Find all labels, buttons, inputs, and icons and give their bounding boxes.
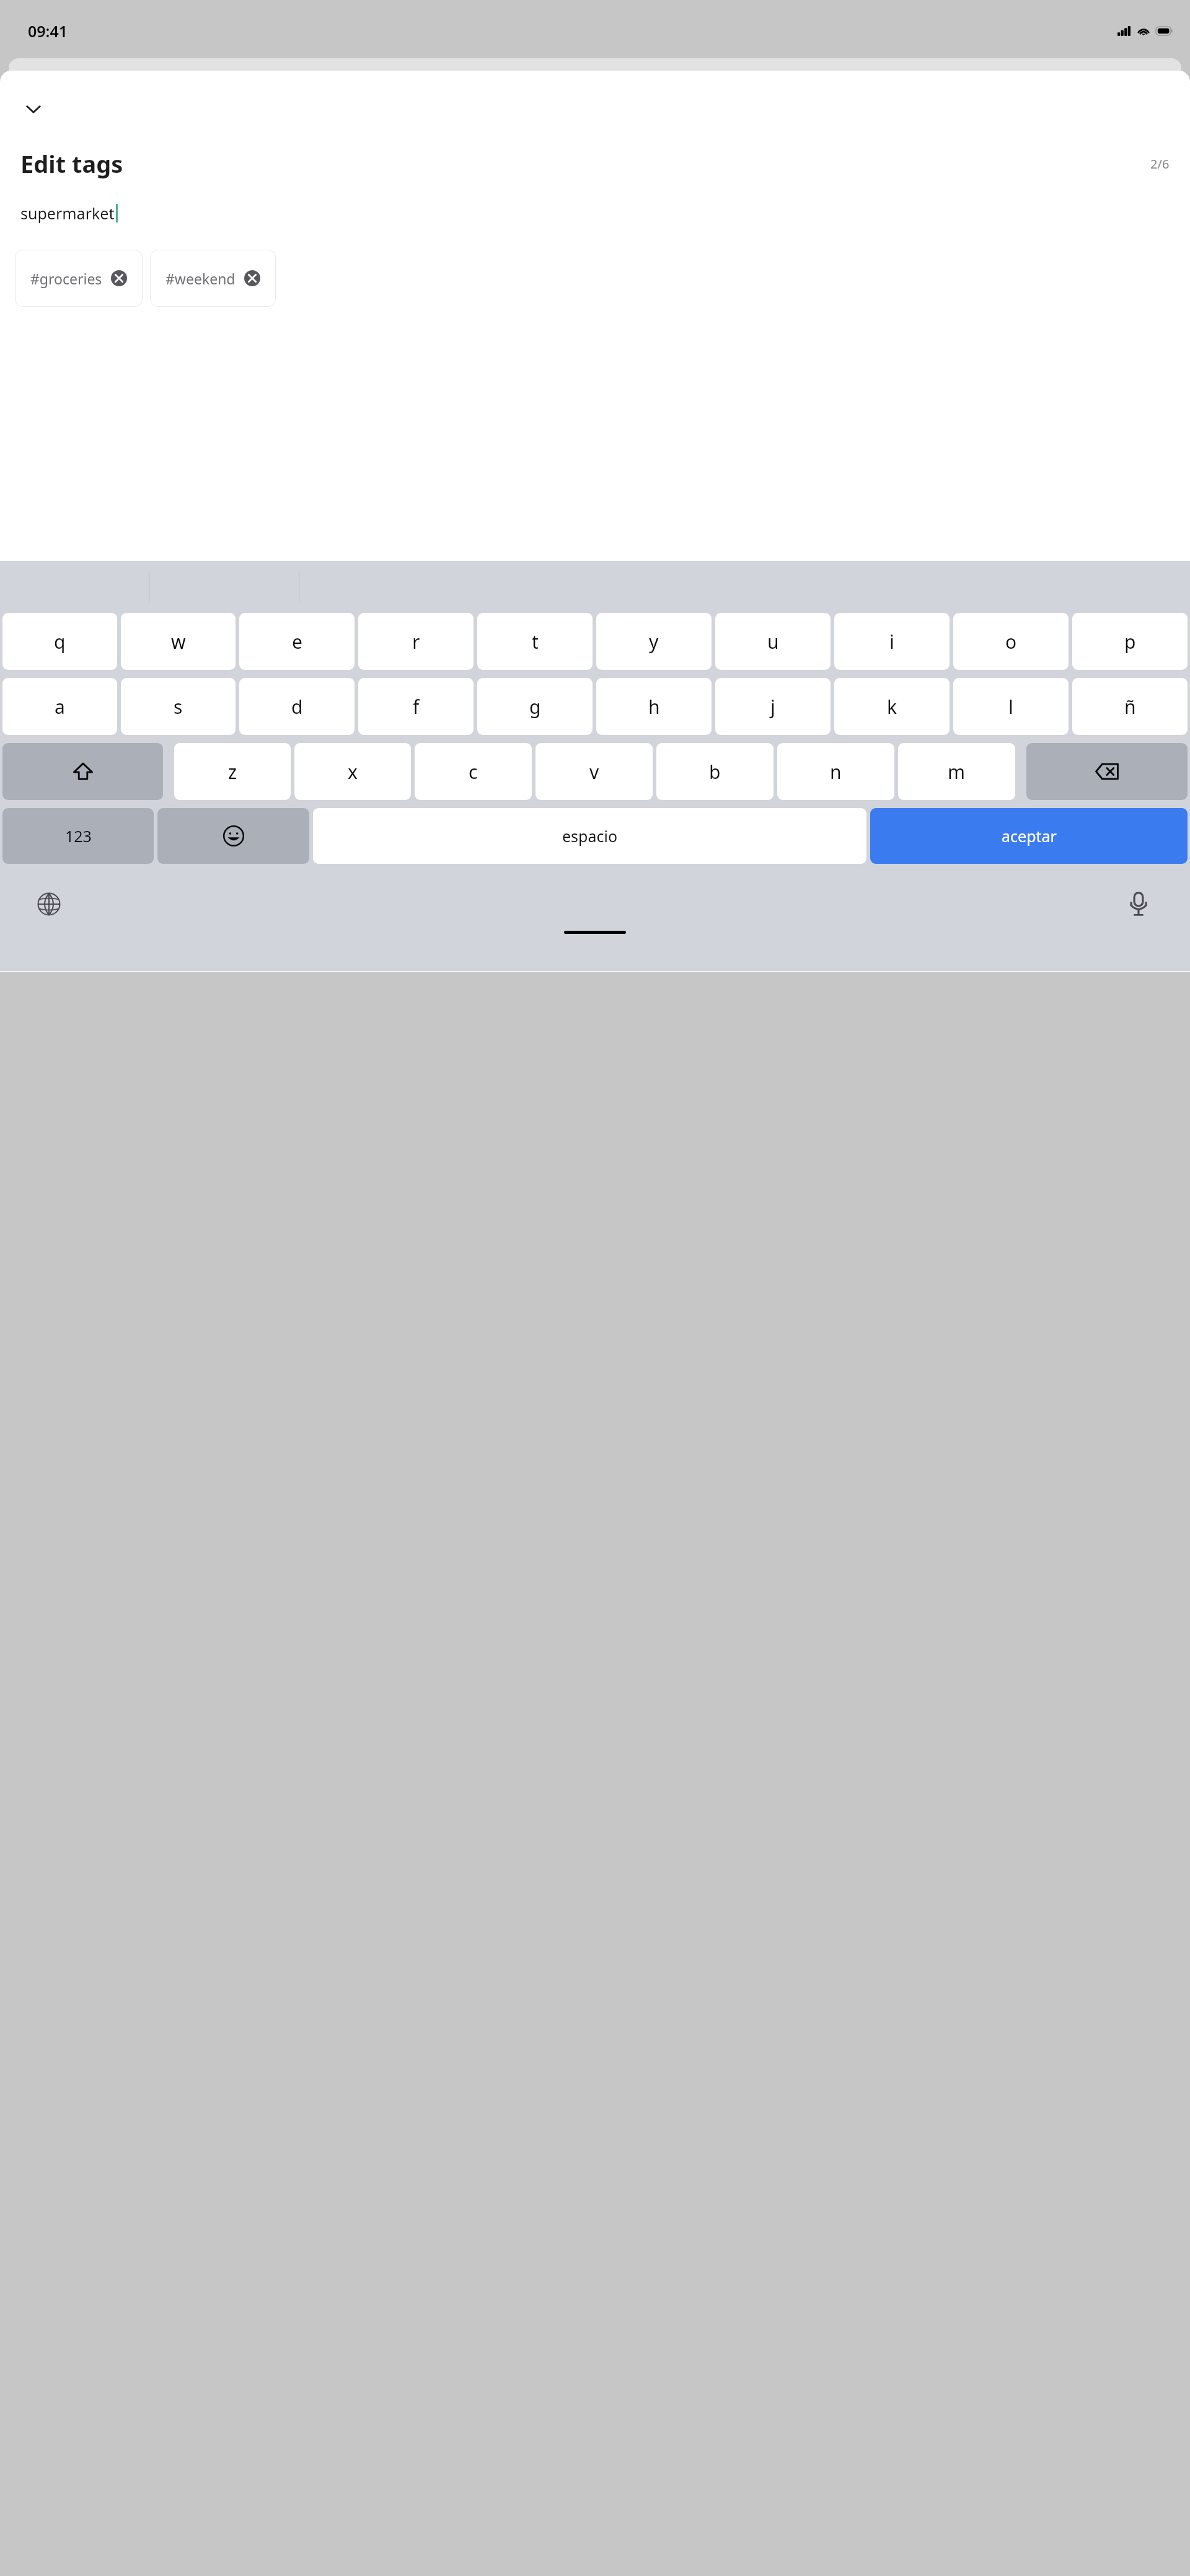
staticText: n bbox=[830, 759, 842, 785]
button[interactable]: t bbox=[477, 613, 593, 670]
staticText: t bbox=[532, 629, 539, 654]
staticText: 09:41 bbox=[28, 20, 68, 42]
staticText: s bbox=[174, 694, 183, 719]
staticText: r bbox=[412, 629, 420, 654]
staticText: q bbox=[54, 629, 66, 654]
button[interactable]: 123 bbox=[2, 808, 154, 864]
button[interactable]: v bbox=[535, 743, 653, 800]
button[interactable]: i bbox=[834, 613, 950, 670]
button[interactable]: j bbox=[715, 678, 831, 735]
button[interactable]: Change keyboard language bbox=[32, 887, 66, 921]
button[interactable]: espacio bbox=[313, 808, 866, 864]
staticText: u bbox=[767, 629, 779, 654]
staticText: x bbox=[348, 759, 358, 785]
button[interactable]: l bbox=[953, 678, 1069, 735]
button[interactable]: e bbox=[239, 613, 355, 670]
button[interactable]: p bbox=[1072, 613, 1188, 670]
staticText: m bbox=[948, 759, 966, 785]
button[interactable]: s bbox=[121, 678, 236, 735]
button[interactable]: k bbox=[834, 678, 950, 735]
button[interactable]: f bbox=[358, 678, 474, 735]
staticText: c bbox=[469, 759, 478, 785]
button[interactable]: aceptar bbox=[870, 808, 1188, 864]
button[interactable]: w bbox=[121, 613, 236, 670]
staticText: d bbox=[291, 694, 303, 719]
button[interactable]: o bbox=[953, 613, 1069, 670]
staticText: j bbox=[770, 694, 775, 719]
staticText: ñ bbox=[1124, 694, 1136, 719]
button[interactable]: Voice input bbox=[1122, 887, 1155, 921]
staticText: #weekend bbox=[165, 269, 236, 288]
staticText: i bbox=[889, 629, 894, 654]
button[interactable]: Backspace bbox=[1026, 743, 1188, 800]
staticText: p bbox=[1124, 629, 1136, 654]
staticText: v bbox=[589, 759, 599, 785]
button[interactable]: Shift bbox=[2, 743, 163, 800]
staticText: h bbox=[648, 694, 660, 719]
staticText: f bbox=[413, 694, 420, 719]
staticText: w bbox=[171, 629, 186, 654]
staticText: l bbox=[1008, 694, 1013, 719]
staticText: Edit tags bbox=[20, 147, 123, 180]
button[interactable]: m bbox=[898, 743, 1015, 800]
staticText: k bbox=[887, 694, 897, 719]
button[interactable]: q bbox=[2, 613, 117, 670]
button[interactable]: g bbox=[477, 678, 593, 735]
other: Remove #weekend bbox=[244, 270, 260, 286]
button[interactable]: c bbox=[415, 743, 532, 800]
button[interactable]: Emoji bbox=[157, 808, 309, 864]
button[interactable]: supermarket bbox=[20, 200, 1170, 226]
button[interactable]: n bbox=[777, 743, 894, 800]
staticText: b bbox=[709, 759, 721, 785]
button[interactable]: u bbox=[715, 613, 831, 670]
staticText: supermarket bbox=[20, 203, 115, 224]
staticText: o bbox=[1005, 629, 1017, 654]
button[interactable]: b bbox=[656, 743, 773, 800]
staticText: espacio bbox=[562, 825, 618, 846]
button[interactable]: #groceries bbox=[15, 250, 143, 307]
staticText: a bbox=[55, 694, 65, 719]
button[interactable]: a bbox=[2, 678, 117, 735]
staticText: z bbox=[228, 759, 237, 785]
button[interactable]: y bbox=[596, 613, 712, 670]
button[interactable]: z bbox=[174, 743, 291, 800]
button[interactable]: d bbox=[239, 678, 355, 735]
staticText: 123 bbox=[65, 825, 92, 846]
button[interactable]: Collapse bbox=[17, 93, 50, 125]
button[interactable]: h bbox=[596, 678, 712, 735]
button[interactable]: #weekend bbox=[150, 250, 276, 307]
staticText: e bbox=[292, 629, 302, 654]
button[interactable]: x bbox=[294, 743, 411, 800]
button[interactable]: ñ bbox=[1072, 678, 1188, 735]
staticText: #groceries bbox=[30, 269, 102, 288]
staticText: y bbox=[649, 629, 659, 654]
staticText: aceptar bbox=[1002, 825, 1057, 846]
other: Remove #groceries bbox=[111, 270, 127, 286]
staticText: 2/6 bbox=[1150, 156, 1170, 172]
staticText: g bbox=[529, 694, 541, 719]
button[interactable]: r bbox=[358, 613, 474, 670]
